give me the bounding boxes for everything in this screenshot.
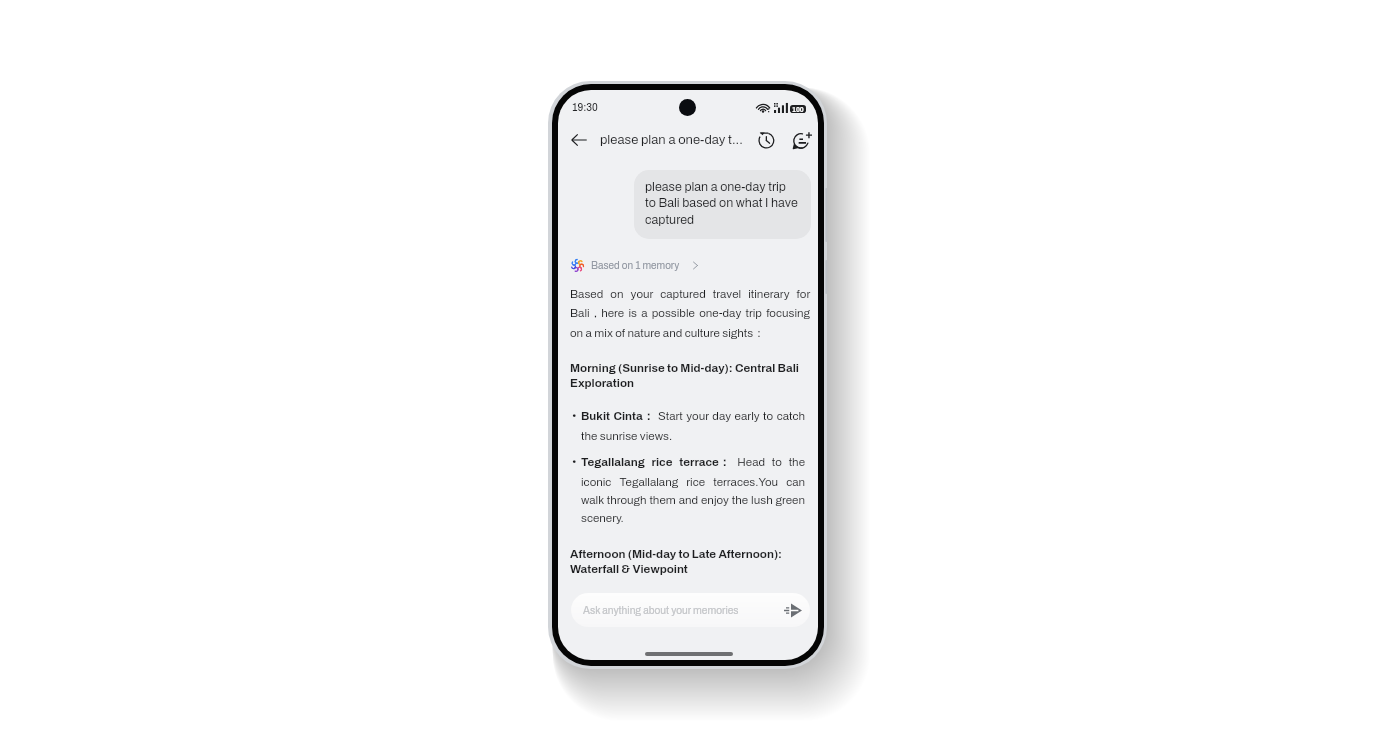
staticText: 19:30 [572,102,598,113]
staticText: Morning (Sunrise to Mid-day): Central Ba… [570,362,810,390]
button[interactable]: Back [566,127,592,153]
staticText: Based on 1 memory [591,260,680,271]
staticText: 100 [792,106,804,113]
staticText: Tegallalang rice terrace： Head to the ic… [581,455,805,524]
button[interactable]: please plan a one-day trip to Bali based… [634,170,811,239]
staticText: please plan a one-day trip to Bali based… [645,180,799,227]
staticText: please plan a one-day t... [600,133,743,147]
staticText: • [572,455,577,468]
staticText: • [572,409,577,422]
staticText: Ask anything about your memories [583,605,739,616]
staticText: Bukit Cinta： Start your day early to cat… [581,409,805,442]
button[interactable]: Based on 1 memory [569,258,702,273]
staticText: Afternoon (Mid-day to Late Afternoon): W… [570,548,810,576]
button[interactable]: New chat [789,127,815,153]
button[interactable]: Ask anything about your memories [571,593,810,627]
button[interactable]: History [753,127,779,153]
button[interactable]: Send [782,600,804,620]
staticText: Based on your captured travel itinerary … [570,288,810,340]
